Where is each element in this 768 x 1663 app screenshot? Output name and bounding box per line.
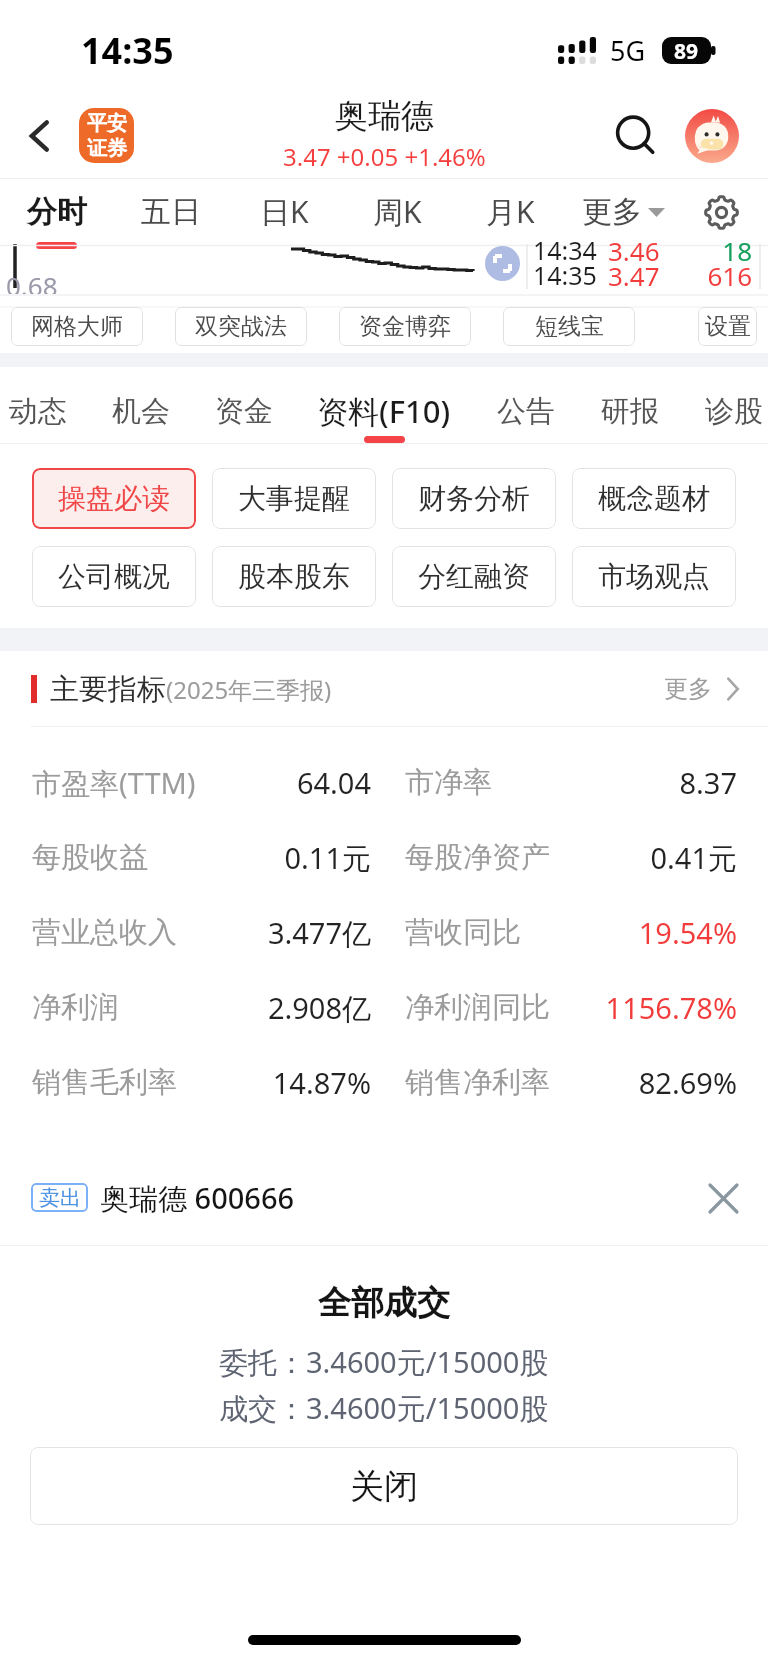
staticText: 短线宝 [535,312,604,341]
staticText: 主要指标 [50,671,166,708]
staticText: 公司概况 [58,559,170,594]
button[interactable]: Settings [696,187,746,237]
staticText: 销售净利率 [405,1064,550,1101]
staticText: 五日 [141,193,201,231]
staticText: 8.37 [536,763,737,802]
staticText: 分时 [27,193,87,231]
button[interactable]: 股本股东 [212,546,376,607]
staticText: 18 [600,233,752,268]
button[interactable]: 更多 [567,179,680,244]
staticText: 净利润同比 [405,989,550,1026]
staticText: 证券 [87,136,127,161]
button[interactable]: 研报 [560,375,700,447]
staticText: 全部成交 [318,1282,450,1324]
staticText: 奥瑞德 [335,95,434,137]
staticText: 更多 [582,193,642,231]
staticText: 每股收益 [32,839,148,876]
staticText: 14.87% [170,1063,371,1102]
staticText: 设置 [705,312,751,341]
button[interactable]: 五日 [114,179,228,244]
staticText: 市盈率(TTM) [32,763,196,803]
staticText: 市净率 [405,764,492,801]
button[interactable]: 短线宝 [503,307,635,346]
button[interactable]: 公司概况 [32,546,196,607]
button[interactable]: 动态 [0,375,108,447]
staticText: 64.04 [170,763,371,802]
staticText: 平安 [87,111,127,136]
button[interactable]: 关闭 [30,1447,738,1525]
button[interactable]: Ping An Securities [79,108,134,163]
staticText: 分红融资 [418,559,530,594]
staticText: 89 [674,37,699,64]
button[interactable]: 资金 [174,375,314,447]
staticText: 更多 [664,674,712,704]
staticText: 14:35 [533,258,613,292]
staticText: 机会 [112,393,170,430]
staticText: 销售毛利率 [32,1064,177,1101]
staticText: 资金 [215,393,273,430]
staticText: 资料(F10) [317,390,451,432]
staticText: 市场观点 [598,559,710,594]
button[interactable]: 主要指标 [31,651,740,727]
staticText: 诊股 [705,393,763,430]
staticText: 奥瑞德 600666 [100,1178,295,1218]
button[interactable]: 大事提醒 [212,468,376,529]
button[interactable]: 概念题材 [572,468,736,529]
button[interactable]: 资金博弈 [339,307,471,346]
staticText: 3.46 [608,233,668,268]
staticText: 0.41元 [536,838,737,878]
staticText: 82.69% [536,1063,737,1102]
staticText: 0.11元 [170,838,371,878]
button[interactable]: Profile [685,109,739,163]
staticText: 动态 [9,393,67,430]
button[interactable]: 日K [228,179,341,244]
staticText: 3.47 +0.05 +1.46% [283,140,486,173]
staticText: 营业总收入 [32,914,177,951]
staticText: 月K [486,191,535,232]
staticText: 财务分析 [418,481,530,516]
staticText: 研报 [601,393,659,430]
button[interactable]: 双突战法 [175,307,307,346]
button[interactable]: 网格大师 [11,307,143,346]
staticText: 0.68 [6,268,58,303]
button[interactable]: 市场观点 [572,546,736,607]
button[interactable]: 财务分析 [392,468,556,529]
button[interactable]: 诊股 [664,375,768,447]
staticText: 委托：3.4600元/15000股 [219,1342,549,1382]
staticText: 营收同比 [405,914,521,951]
staticText: 616 [600,258,752,293]
button[interactable]: Search [604,106,664,166]
staticText: 19.54% [536,913,737,952]
staticText: 5G [610,32,646,69]
button[interactable]: 公告 [456,375,596,447]
button[interactable]: Fullscreen [485,246,520,281]
staticText: 大事提醒 [238,481,350,516]
staticText: 日K [260,191,309,232]
button[interactable]: Back [10,106,70,166]
button[interactable]: 分时 [0,179,114,244]
button[interactable]: 月K [454,179,567,244]
staticText: 操盘必读 [58,481,170,516]
staticText: 关闭 [350,1465,418,1508]
staticText: 卖出 [39,1185,81,1211]
button[interactable]: Close [699,1174,747,1222]
staticText: 每股净资产 [405,839,550,876]
staticText: 资金博弈 [359,312,451,341]
staticText: 成交：3.4600元/15000股 [219,1388,549,1428]
staticText: 概念题材 [598,481,710,516]
button[interactable]: 设置 [698,307,757,346]
staticText: 股本股东 [238,559,350,594]
button[interactable]: 操盘必读 [32,468,196,529]
button[interactable]: 资料(F10) [314,375,454,447]
staticText: 网格大师 [31,312,123,341]
staticText: 3.477亿 [170,913,371,953]
staticText: 净利润 [32,989,119,1026]
staticText: 2.908亿 [170,988,371,1028]
staticText: 14:35 [81,26,174,75]
staticText: 双突战法 [195,312,287,341]
staticText: 1156.78% [536,988,737,1027]
staticText: 周K [373,191,422,232]
button[interactable]: 分红融资 [392,546,556,607]
button[interactable]: 机会 [71,375,211,447]
button[interactable]: 周K [341,179,454,244]
